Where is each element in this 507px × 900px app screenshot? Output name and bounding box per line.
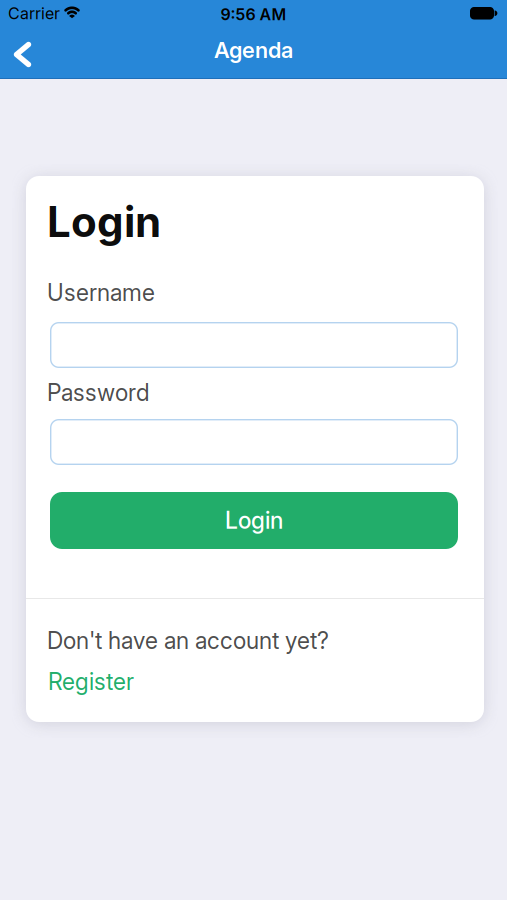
button[interactable]: Back: [0, 30, 49, 78]
staticText: 9:56 AM: [220, 5, 286, 24]
staticText: Password: [47, 379, 150, 406]
button[interactable]: Login: [50, 492, 458, 549]
staticText: Username: [47, 279, 155, 306]
staticText: Register: [48, 668, 134, 695]
staticText: Login: [47, 197, 161, 246]
button[interactable]: Register: [48, 668, 134, 695]
staticText: Login: [225, 507, 283, 534]
staticText: Agenda: [214, 37, 293, 63]
staticText: Don't have an account yet?: [47, 627, 329, 654]
button[interactable]: Username: [50, 322, 458, 368]
staticText: Carrier: [8, 4, 60, 23]
button[interactable]: Password: [50, 419, 458, 465]
